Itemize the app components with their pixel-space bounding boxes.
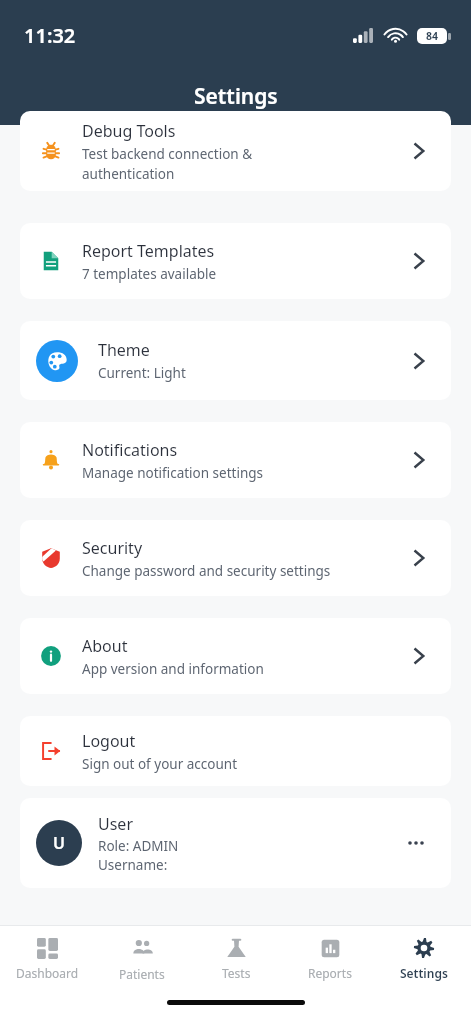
- staticText: Tests: [222, 965, 251, 981]
- staticText: Settings: [400, 965, 448, 981]
- button[interactable]: More options: [401, 828, 431, 858]
- staticText: Dashboard: [16, 965, 79, 981]
- staticText: Patients: [119, 966, 165, 982]
- staticText: Username:: [98, 856, 168, 874]
- button[interactable]: Reports: [283, 934, 377, 981]
- staticText: User: [98, 813, 133, 835]
- staticText: Test backend connection & authentication: [82, 145, 253, 183]
- button[interactable]: Security: [20, 520, 451, 596]
- staticText: Role: ADMIN: [98, 837, 179, 855]
- staticText: Settings: [194, 82, 278, 111]
- button[interactable]: Patients: [95, 933, 189, 982]
- staticText: App version and information: [82, 660, 264, 678]
- button[interactable]: Logout: [20, 716, 451, 786]
- staticText: Theme: [98, 339, 150, 361]
- staticText: Logout: [82, 730, 136, 752]
- staticText: 11:32: [24, 22, 76, 49]
- staticText: Notifications: [82, 439, 178, 461]
- staticText: 84: [426, 29, 439, 43]
- button[interactable]: About: [20, 618, 451, 694]
- button[interactable]: Dashboard: [0, 934, 95, 981]
- button[interactable]: Report Templates: [20, 223, 451, 299]
- staticText: Debug Tools: [82, 120, 176, 142]
- staticText: Change password and security settings: [82, 562, 331, 580]
- staticText: U: [53, 832, 65, 854]
- staticText: About: [82, 635, 128, 657]
- staticText: Report Templates: [82, 240, 215, 262]
- button[interactable]: U: [20, 798, 451, 888]
- staticText: Current: Light: [98, 364, 186, 382]
- staticText: Security: [82, 537, 143, 559]
- button[interactable]: Settings: [377, 933, 471, 981]
- staticText: Sign out of your account: [82, 755, 238, 773]
- button[interactable]: Notifications: [20, 422, 451, 498]
- staticText: 7 templates available: [82, 265, 217, 283]
- button[interactable]: Theme: [20, 321, 451, 400]
- button[interactable]: Tests: [189, 934, 283, 981]
- staticText: Manage notification settings: [82, 464, 264, 482]
- button[interactable]: Debug Tools: [20, 111, 451, 191]
- staticText: Reports: [308, 965, 352, 981]
